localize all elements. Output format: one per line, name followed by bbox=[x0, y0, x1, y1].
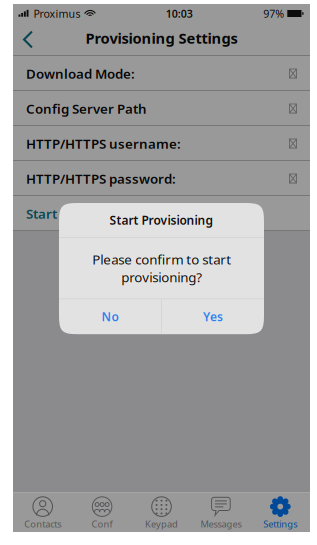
staticText: Settings bbox=[263, 518, 297, 530]
button[interactable]: HTTP/HTTPS password: bbox=[13, 161, 310, 196]
button[interactable]: Contacts bbox=[13, 493, 72, 532]
staticText: 97% bbox=[263, 6, 284, 21]
staticText: Start bbox=[26, 205, 57, 222]
staticText: HTTP/HTTPS password: bbox=[26, 170, 176, 187]
staticText: Contacts bbox=[24, 518, 61, 530]
staticText: 10:03 bbox=[166, 6, 193, 21]
button[interactable]: Download Mode: bbox=[13, 56, 310, 91]
staticText: Please confirm to start provisioning? bbox=[92, 250, 231, 286]
staticText: Conf bbox=[92, 518, 113, 530]
button[interactable]: Start bbox=[13, 196, 310, 231]
button[interactable]: Back bbox=[13, 22, 49, 56]
staticText: HTTP/HTTPS username: bbox=[26, 135, 181, 152]
staticText: Proximus bbox=[33, 6, 80, 21]
button[interactable]: Yes bbox=[162, 299, 264, 334]
staticText: Provisioning Settings bbox=[85, 28, 237, 48]
staticText: Keypad bbox=[145, 518, 178, 530]
button[interactable]: No bbox=[59, 299, 161, 334]
button[interactable]: Settings bbox=[251, 493, 310, 532]
button[interactable]: Config Server Path bbox=[13, 91, 310, 126]
staticText: Download Mode: bbox=[26, 65, 135, 82]
button[interactable]: Messages bbox=[191, 493, 251, 532]
staticText: Config Server Path bbox=[26, 100, 147, 117]
staticText: Messages bbox=[200, 518, 241, 530]
button[interactable]: HTTP/HTTPS username: bbox=[13, 126, 310, 161]
staticText: Yes bbox=[203, 309, 223, 325]
button[interactable]: Keypad bbox=[132, 493, 191, 532]
button[interactable]: Conf bbox=[72, 493, 132, 532]
staticText: Start Provisioning bbox=[109, 212, 213, 228]
staticText: No bbox=[102, 309, 119, 325]
